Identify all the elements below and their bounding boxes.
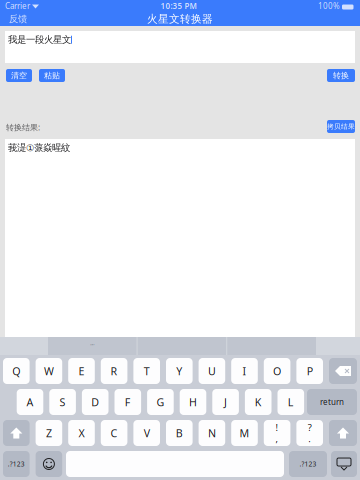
button[interactable]: Z <box>36 420 62 446</box>
staticText: E <box>78 364 84 378</box>
button[interactable]: O <box>264 358 290 384</box>
staticText: 反馈 <box>9 13 27 25</box>
button[interactable]: Question mark <box>296 420 323 446</box>
staticText: 10:35 PM <box>160 1 196 11</box>
staticText: B <box>176 426 183 440</box>
button[interactable]: Numbers <box>289 451 327 477</box>
button[interactable]: B <box>166 420 193 446</box>
button[interactable]: W <box>36 358 62 384</box>
button[interactable]: T <box>133 358 160 384</box>
staticText: return <box>320 397 344 407</box>
button[interactable]: 转换 <box>327 69 355 82</box>
staticText: I <box>242 364 246 378</box>
button[interactable]: Backspace <box>329 358 357 384</box>
button[interactable]: A <box>17 389 43 415</box>
button[interactable]: Hide keyboard <box>331 451 357 477</box>
staticText: F <box>125 395 131 409</box>
staticText: T <box>144 364 150 378</box>
staticText: N <box>208 426 216 440</box>
staticText: , <box>276 432 279 445</box>
button[interactable]: S <box>49 389 76 415</box>
button[interactable]: X <box>68 420 95 446</box>
button[interactable]: F <box>114 389 141 415</box>
staticText: R <box>111 364 118 378</box>
button[interactable]: Q <box>3 358 30 384</box>
button[interactable]: J <box>212 389 239 415</box>
staticText: 清空 <box>11 71 27 80</box>
staticText: Z <box>46 426 52 440</box>
staticText: 100% <box>318 1 340 11</box>
staticText: 火星文转换器 <box>147 12 213 25</box>
button[interactable]: R <box>101 358 127 384</box>
staticText: P <box>307 364 313 378</box>
staticText: . <box>308 432 311 445</box>
button[interactable]: 反馈 <box>5 11 31 27</box>
staticText: 粘贴 <box>44 71 60 80</box>
staticText: 转换 <box>333 71 349 80</box>
staticText: ? <box>308 421 312 433</box>
button[interactable]: Exclamation point <box>264 420 290 446</box>
staticText: A <box>26 395 33 409</box>
staticText: 我是一段火星文 <box>8 34 71 45</box>
staticText: “” <box>90 342 94 350</box>
staticText: Carrier <box>5 1 30 11</box>
button[interactable]: U <box>199 358 225 384</box>
staticText: H <box>189 395 197 409</box>
staticText: .?123 <box>8 460 25 468</box>
button[interactable]: Emoji <box>36 451 62 477</box>
button[interactable]: M <box>231 420 258 446</box>
button[interactable]: 清空 <box>6 69 32 82</box>
button[interactable]: Shift <box>3 420 30 446</box>
staticText: ! <box>276 421 279 433</box>
staticText: 拷贝结果 <box>327 122 355 131</box>
staticText: 转换结果: <box>6 122 40 133</box>
button[interactable]: 粘贴 <box>39 69 65 82</box>
button[interactable]: C <box>101 420 127 446</box>
button[interactable]: P <box>296 358 323 384</box>
button[interactable]: K <box>245 389 271 415</box>
button[interactable]: V <box>133 420 160 446</box>
button[interactable]: I <box>231 358 258 384</box>
staticText: X <box>78 426 84 440</box>
staticText: W <box>44 364 54 378</box>
staticText: S <box>60 395 66 409</box>
button[interactable]: Y <box>166 358 193 384</box>
staticText: L <box>288 395 294 409</box>
button[interactable]: 拷贝结果 <box>327 120 355 133</box>
staticText: 莪湜①蒎焱暒紋 <box>8 142 70 153</box>
staticText: K <box>255 395 262 409</box>
staticText: G <box>156 395 164 409</box>
button[interactable]: D <box>82 389 108 415</box>
staticText: U <box>208 364 216 378</box>
button[interactable]: L <box>277 389 304 415</box>
staticText: .?123 <box>299 460 316 468</box>
button[interactable]: G <box>147 389 174 415</box>
staticText: D <box>91 395 99 409</box>
button[interactable]: return <box>307 389 357 415</box>
button[interactable]: N <box>199 420 225 446</box>
staticText: J <box>224 395 227 409</box>
staticText: Y <box>176 364 182 378</box>
staticText: M <box>239 426 249 440</box>
button[interactable]: Numbers <box>3 451 30 477</box>
staticText: V <box>144 426 150 440</box>
button[interactable]: E <box>68 358 95 384</box>
button[interactable]: Shift <box>329 420 357 446</box>
staticText: Q <box>12 364 20 378</box>
button[interactable]: H <box>180 389 206 415</box>
staticText: C <box>111 426 118 440</box>
staticText: O <box>273 364 281 378</box>
